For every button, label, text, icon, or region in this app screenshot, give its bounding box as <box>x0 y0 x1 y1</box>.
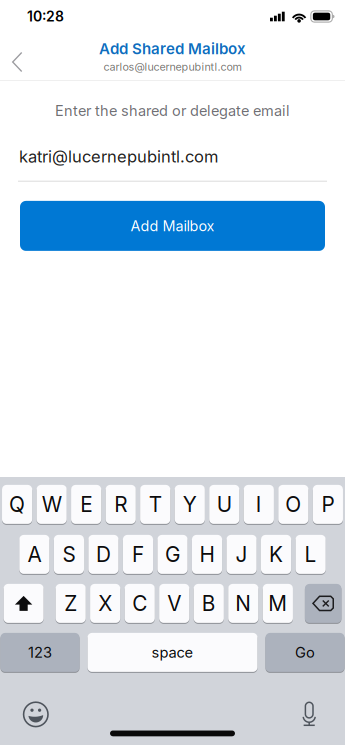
staticText: D <box>96 542 111 567</box>
staticText: 123 <box>28 643 52 661</box>
staticText: M <box>268 591 287 616</box>
staticText: Add Mailbox <box>130 217 214 235</box>
staticText: Q <box>9 492 25 517</box>
staticText: O <box>285 492 301 517</box>
staticText: G <box>165 542 180 567</box>
button[interactable]: M <box>263 583 293 623</box>
staticText: C <box>132 591 147 616</box>
button[interactable]: H <box>192 534 222 574</box>
button[interactable]: E <box>71 484 101 524</box>
button[interactable]: Go <box>265 632 344 672</box>
button[interactable]: V <box>159 583 189 623</box>
staticText: T <box>149 492 162 517</box>
button[interactable]: 123 <box>0 632 79 672</box>
staticText: S <box>62 542 75 567</box>
staticText: Go <box>295 643 315 661</box>
staticText: F <box>132 542 144 567</box>
button[interactable]: Emoji <box>16 695 56 733</box>
staticText: H <box>199 542 214 567</box>
button[interactable]: D <box>88 534 118 574</box>
button[interactable]: K <box>261 534 291 574</box>
staticText: P <box>321 492 334 517</box>
button[interactable]: O <box>278 484 308 524</box>
staticText: K <box>269 542 283 567</box>
staticText: A <box>27 542 41 567</box>
button[interactable]: A <box>19 534 49 574</box>
button[interactable]: J <box>226 534 257 574</box>
staticText: 10:28 <box>27 8 64 25</box>
staticText: Z <box>64 591 77 616</box>
staticText: Enter the shared or delegate email <box>55 102 290 120</box>
button[interactable]: G <box>157 534 188 574</box>
button[interactable]: X <box>90 583 120 623</box>
button[interactable]: Add Mailbox <box>20 201 325 251</box>
button[interactable]: L <box>295 534 326 574</box>
button[interactable]: W <box>36 484 67 524</box>
staticText: carlos@lucernepubintl.com <box>103 60 241 73</box>
button[interactable]: P <box>313 484 343 524</box>
button[interactable]: F <box>123 534 153 574</box>
staticText: B <box>202 591 216 616</box>
button[interactable]: B <box>194 583 224 623</box>
button[interactable]: Z <box>56 583 86 623</box>
button[interactable]: Y <box>175 484 205 524</box>
staticText: E <box>80 492 92 517</box>
button[interactable]: I <box>244 484 274 524</box>
staticText: space <box>151 643 193 661</box>
staticText: L <box>305 542 317 567</box>
button[interactable]: S <box>54 534 84 574</box>
staticText: J <box>236 542 248 567</box>
button[interactable]: N <box>228 583 258 623</box>
staticText: X <box>98 591 112 616</box>
staticText: I <box>256 492 262 517</box>
button[interactable]: T <box>140 484 170 524</box>
button[interactable]: U <box>209 484 239 524</box>
staticText: Y <box>183 492 197 517</box>
staticText: Add Shared Mailbox <box>99 40 246 58</box>
button[interactable]: C <box>125 583 155 623</box>
staticText: W <box>42 492 62 517</box>
staticText: V <box>167 591 181 616</box>
button[interactable]: Dictate <box>289 695 329 733</box>
staticText: R <box>114 492 127 517</box>
button[interactable]: space <box>87 632 257 672</box>
button[interactable]: Q <box>2 484 32 524</box>
button[interactable]: R <box>106 484 136 524</box>
button[interactable]: Delete <box>305 583 341 623</box>
staticText: U <box>217 492 232 517</box>
button[interactable]: Shift <box>4 583 44 623</box>
staticText: N <box>235 591 251 616</box>
button[interactable]: Back <box>0 36 41 77</box>
staticText: katri@lucernepubintl.com <box>19 147 218 167</box>
